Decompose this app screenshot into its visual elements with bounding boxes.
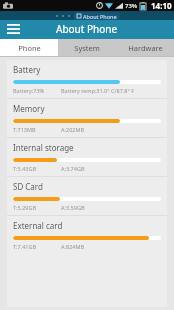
staticText: T:5.43GB bbox=[13, 165, 37, 172]
button[interactable]: System bbox=[58, 39, 116, 56]
staticText: A:3.74GB bbox=[61, 165, 85, 172]
staticText: 73% bbox=[125, 2, 138, 10]
staticText: Phone bbox=[18, 43, 41, 53]
button[interactable]: SD Card bbox=[7, 177, 167, 215]
staticText: Memory bbox=[13, 103, 45, 114]
staticText: T:7.41GB bbox=[13, 243, 37, 250]
staticText: A:3.59GB bbox=[61, 204, 85, 211]
staticText: T:5.29GB bbox=[13, 204, 37, 211]
staticText: Battery:73% bbox=[13, 87, 45, 94]
staticText: A:824MB bbox=[61, 243, 84, 250]
staticText: 14:10 bbox=[151, 0, 172, 11]
staticText: System bbox=[74, 43, 100, 53]
button[interactable]: Hardware bbox=[116, 39, 174, 56]
staticText: Internal storage bbox=[13, 142, 74, 153]
button[interactable]: Phone bbox=[0, 39, 58, 56]
button[interactable]: Memory bbox=[7, 99, 167, 137]
staticText: Hardware bbox=[128, 43, 163, 53]
staticText: External card bbox=[13, 220, 63, 231]
staticText: SD Card bbox=[13, 181, 43, 192]
staticText: Battery bbox=[13, 64, 41, 75]
staticText: A:202MB bbox=[61, 126, 84, 133]
staticText: About Phone bbox=[83, 13, 117, 20]
button[interactable]: Open navigation menu bbox=[0, 20, 26, 37]
button[interactable]: Internal storage bbox=[7, 138, 167, 176]
button[interactable]: Battery bbox=[7, 60, 167, 98]
button[interactable]: About Phone bbox=[74, 12, 120, 20]
button[interactable]: External card bbox=[7, 216, 167, 254]
staticText: Battery temp:31.0° C/87.8° F bbox=[61, 87, 135, 94]
staticText: T:713MB bbox=[13, 126, 36, 133]
staticText: About Phone bbox=[56, 22, 118, 36]
